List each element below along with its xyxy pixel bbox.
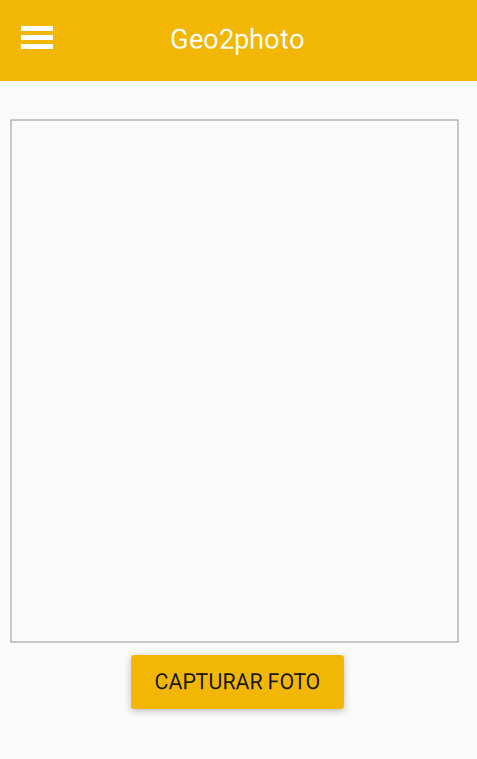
button[interactable]: CAPTURAR FOTO [131, 655, 344, 709]
staticText: Geo2photo [170, 23, 305, 55]
staticText: CAPTURAR FOTO [154, 669, 320, 694]
button[interactable]: Open navigation menu [11, 0, 63, 75]
